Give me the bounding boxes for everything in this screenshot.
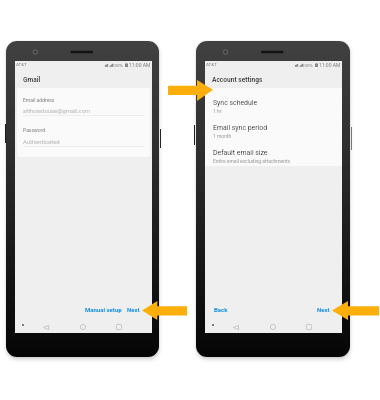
button[interactable]: Keyboard [208,320,218,330]
button[interactable]: Keyboard [18,320,28,330]
button[interactable]: Recent apps [112,320,126,334]
button[interactable]: Back [229,320,243,334]
staticText: AT&T [16,62,27,67]
button[interactable]: Next [125,304,142,315]
staticText: Password [23,127,46,133]
button[interactable]: Manual setup [83,304,124,315]
staticText: Account settings [212,76,263,84]
staticText: Next [317,306,330,313]
staticText: Next [127,306,140,313]
staticText: Default email size [213,149,268,157]
staticText: 100% [302,63,313,68]
staticText: AT&T [206,62,217,67]
staticText: Manual setup [85,306,122,313]
button[interactable]: Recent apps [302,320,316,334]
staticText: Entire email excluding attachments [213,158,291,164]
button[interactable]: Sync schedule [213,99,342,114]
button[interactable]: Back [212,304,230,315]
staticText: Email sync period [213,124,268,132]
staticText: Back [214,306,228,313]
button[interactable]: Home [266,320,280,334]
button[interactable]: Back [39,320,53,334]
staticText: 1 hr [213,108,222,114]
button[interactable]: Home [76,320,90,334]
staticText: 1 month [213,133,232,139]
staticText: 100% [112,63,123,68]
staticText: 11:00 AM [129,62,151,68]
button[interactable]: Next [315,304,332,315]
staticText: atthowdouse@gmail.com [23,108,91,115]
staticText: Gmail [23,76,41,84]
button[interactable]: Default email size [213,149,342,164]
staticText: 11:00 AM [319,62,341,68]
button[interactable]: Email sync period [213,124,342,139]
staticText: Email address [23,97,55,103]
staticText: Sync schedule [213,99,258,107]
staticText: Authenticated [23,139,60,146]
